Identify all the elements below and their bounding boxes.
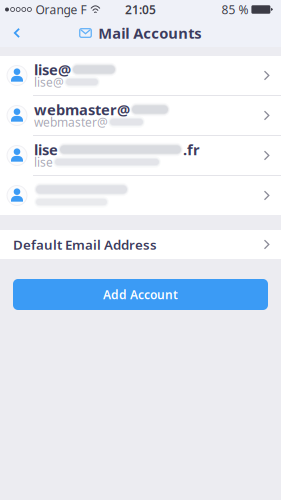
button[interactable]: Back [0,19,34,47]
button[interactable]: Default Email Address [0,230,281,259]
staticText: Add Account [103,286,178,302]
button[interactable]: Add Account [13,279,268,310]
staticText: lise [34,154,53,170]
staticText: Orange F [35,1,86,17]
button[interactable]: lise [0,136,281,175]
staticText: lise [34,140,58,159]
staticText: lise@ [34,60,71,79]
staticText: Default Email Address [13,236,157,253]
button[interactable]: webmaster@ [0,96,281,135]
staticText: .fr [183,140,200,159]
staticText: Mail Accounts [98,23,201,43]
staticText: webmaster@ [34,100,130,119]
staticText: 85 % [221,1,248,17]
button[interactable] [0,176,281,215]
staticText: lise@ [34,74,64,90]
staticText: 21:05 [125,1,156,17]
button[interactable]: lise@ [0,56,281,95]
staticText: webmaster@ [34,114,108,130]
